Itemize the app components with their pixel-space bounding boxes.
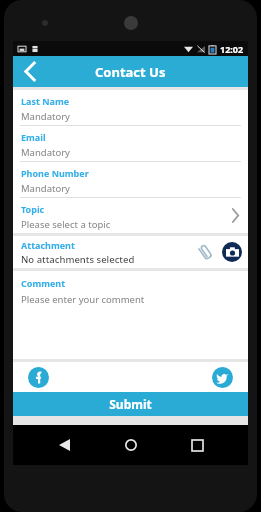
button[interactable]: Comment bbox=[13, 271, 248, 359]
button[interactable]: Phone Number bbox=[13, 162, 248, 197]
button[interactable]: Back bbox=[48, 429, 80, 461]
button[interactable]: Email bbox=[13, 126, 248, 161]
staticText: Last Name bbox=[21, 95, 70, 107]
staticText: Mandatory bbox=[21, 110, 70, 123]
staticText: Please select a topic bbox=[21, 218, 111, 231]
button[interactable]: Last Name bbox=[13, 90, 248, 125]
staticText: Attachment bbox=[21, 239, 75, 251]
staticText: Submit bbox=[109, 396, 152, 412]
button[interactable]: Twitter bbox=[212, 367, 233, 388]
staticText: Please enter your comment bbox=[21, 293, 145, 306]
button[interactable]: Home bbox=[115, 429, 147, 461]
staticText: Mandatory bbox=[21, 182, 70, 195]
button[interactable]: Facebook bbox=[28, 367, 49, 388]
staticText: Topic bbox=[21, 203, 45, 215]
button[interactable]: Recent apps bbox=[181, 429, 213, 461]
staticText: Comment bbox=[21, 277, 66, 289]
button[interactable]: Take photo bbox=[222, 242, 242, 262]
button[interactable]: Attach file bbox=[194, 241, 216, 263]
button[interactable]: Submit bbox=[13, 392, 248, 416]
staticText: 12:02 bbox=[220, 43, 244, 55]
button[interactable]: Back bbox=[13, 56, 47, 87]
staticText: No attachments selected bbox=[21, 253, 135, 266]
staticText: Phone Number bbox=[21, 167, 89, 179]
staticText: Email bbox=[21, 131, 46, 143]
staticText: Contact Us bbox=[95, 63, 166, 81]
staticText: Mandatory bbox=[21, 146, 70, 159]
button[interactable]: Topic bbox=[13, 198, 248, 233]
